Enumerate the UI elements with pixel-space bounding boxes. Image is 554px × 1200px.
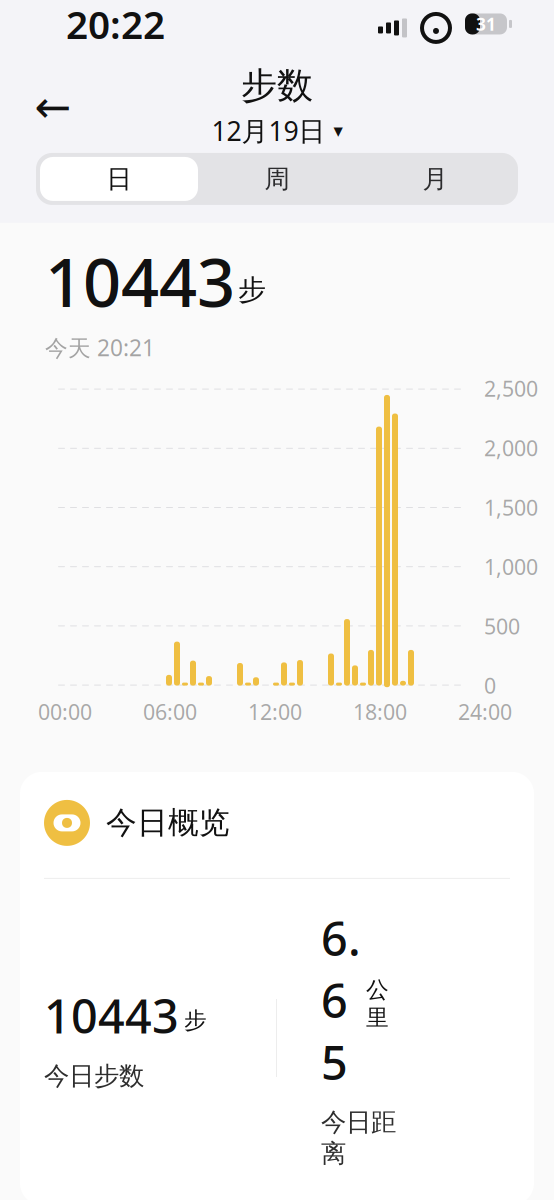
staticText: ▾ [333, 120, 342, 141]
staticText: 00:00 [38, 698, 92, 726]
button[interactable]: 日 [40, 157, 198, 201]
staticText: 周 [264, 163, 289, 194]
staticText: 步数 [241, 64, 313, 108]
button[interactable]: 返回 [24, 78, 82, 136]
staticText: 2,500 [484, 374, 538, 403]
staticText: 今日步数 [44, 1060, 144, 1091]
staticText: 06:00 [143, 698, 197, 726]
staticText: 步 [184, 1007, 207, 1034]
staticText: 500 [484, 612, 520, 640]
staticText: 24:00 [458, 698, 512, 726]
staticText: 20:22 [66, 0, 165, 50]
staticText: 10443 [45, 237, 235, 325]
staticText: 0 [484, 671, 496, 700]
staticText: 12月19日 [211, 113, 325, 148]
staticText: 1,500 [484, 493, 538, 521]
staticText: 2,000 [484, 434, 538, 462]
button[interactable]: 周 [198, 157, 356, 201]
button[interactable]: 12月19日 [207, 111, 346, 150]
staticText: 今日概览 [106, 804, 230, 842]
staticText: 10443 [44, 984, 179, 1046]
staticText: 6.65 [321, 907, 361, 1093]
staticText: 今日距离 [321, 1107, 396, 1169]
staticText: 公里 [366, 976, 389, 1032]
staticText: 18:00 [353, 698, 407, 726]
staticText: ← [34, 82, 71, 132]
staticText: 月 [422, 163, 447, 194]
staticText: 今天 20:21 [45, 332, 155, 363]
staticText: 日 [106, 163, 131, 194]
staticText: 12:00 [248, 698, 302, 726]
staticText: 步 [238, 273, 266, 307]
button[interactable]: 月 [356, 157, 514, 201]
staticText: 1,000 [484, 553, 538, 581]
staticText: 31 [476, 12, 496, 35]
